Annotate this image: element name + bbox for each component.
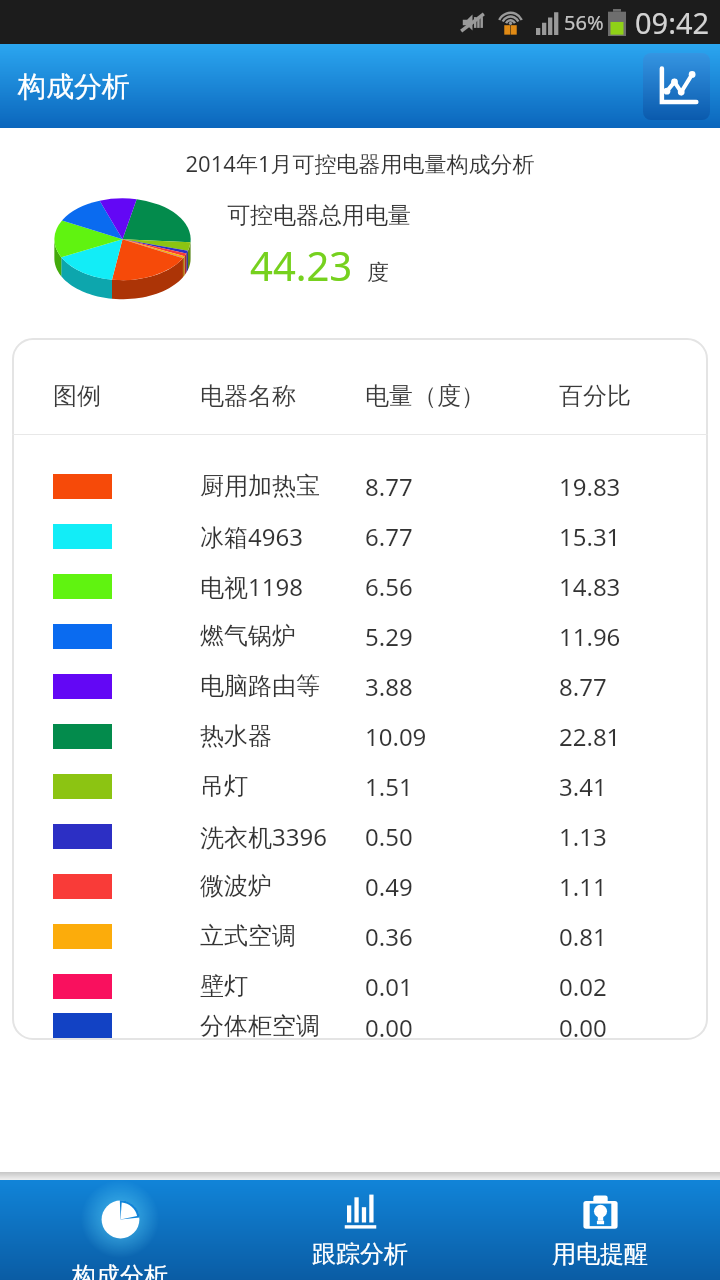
staticText: 19.83 [559,470,621,503]
staticText: 10.09 [365,720,427,753]
staticText: 立式空调 [200,921,296,951]
staticText: 8.77 [365,470,413,503]
staticText: 0.49 [365,870,413,903]
button[interactable]: 厨用加热宝 [12,461,708,511]
staticText: 5.29 [365,620,413,653]
button[interactable]: 洗衣机3396 [12,811,708,861]
staticText: 22.81 [559,720,621,753]
staticText: 3.41 [559,770,607,803]
button[interactable]: 电脑路由等 [12,661,708,711]
button[interactable]: 壁灯 [12,961,708,1011]
staticText: 3.88 [365,670,413,703]
staticText: 8.77 [559,670,607,703]
button[interactable]: 电视1198 [12,561,708,611]
button[interactable]: 跟踪分析 [240,1180,480,1280]
staticText: 6.56 [365,570,413,603]
button[interactable]: 用电提醒 [480,1180,720,1280]
button[interactable]: 分体柜空调 [12,1011,708,1040]
staticText: 56% [564,9,604,36]
staticText: 冰箱4963 [200,520,303,553]
staticText: 0.81 [559,920,607,953]
button[interactable]: 立式空调 [12,911,708,961]
staticText: 0.36 [365,920,413,953]
staticText: 0.02 [559,970,607,1003]
staticText: 厨用加热宝 [200,471,320,501]
staticText: 0.00 [559,1011,607,1040]
staticText: 电量（度） [365,381,485,411]
staticText: 电器名称 [200,381,296,411]
staticText: 电视1198 [200,570,303,603]
button[interactable]: 热水器 [12,711,708,761]
staticText: 09:42 [635,3,710,42]
staticText: 构成分析 [72,1261,168,1280]
staticText: 燃气锅炉 [200,621,296,651]
staticText: 跟踪分析 [312,1239,408,1269]
staticText: 壁灯 [200,971,248,1001]
staticText: 2014年1月可控电器用电量构成分析 [0,148,720,178]
staticText: 1.13 [559,820,607,853]
staticText: 0.01 [365,970,413,1003]
staticText: 15.31 [559,520,621,553]
button[interactable]: 趋势图表 [643,53,710,120]
staticText: 度 [367,259,389,287]
staticText: 1.11 [559,870,607,903]
staticText: 电脑路由等 [200,671,320,701]
staticText: 吊灯 [200,771,248,801]
button[interactable]: 构成分析 [0,1180,240,1280]
staticText: 11.96 [559,620,621,653]
staticText: 构成分析 [18,69,130,104]
button[interactable]: 冰箱4963 [12,511,708,561]
staticText: 洗衣机3396 [200,820,327,853]
staticText: 0.50 [365,820,413,853]
staticText: 14.83 [559,570,621,603]
staticText: 百分比 [559,381,631,411]
staticText: 6.77 [365,520,413,553]
staticText: 微波炉 [200,871,272,901]
staticText: 分体柜空调 [200,1011,320,1040]
staticText: 44.23 [250,238,353,292]
staticText: 图例 [53,381,101,411]
button[interactable]: 微波炉 [12,861,708,911]
staticText: 可控电器总用电量 [227,201,411,230]
staticText: 1.51 [365,770,413,803]
button[interactable]: 燃气锅炉 [12,611,708,661]
staticText: 用电提醒 [552,1239,648,1269]
staticText: 热水器 [200,721,272,751]
staticText: 0.00 [365,1011,413,1040]
button[interactable]: 吊灯 [12,761,708,811]
